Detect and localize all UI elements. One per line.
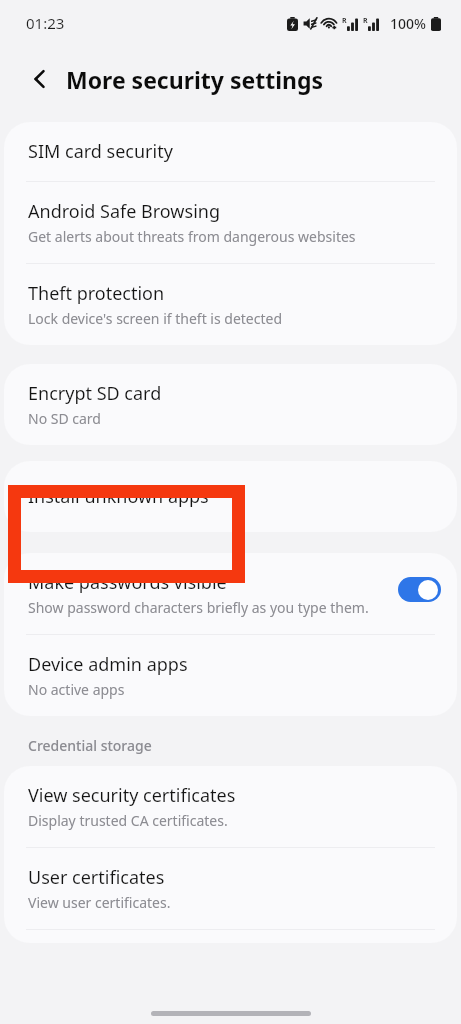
staticText: Lock device's screen if theft is detecte… bbox=[28, 309, 283, 328]
staticText: Get alerts about threats from dangerous … bbox=[28, 227, 356, 246]
staticText: Theft protection bbox=[28, 281, 165, 306]
button[interactable]: Device admin apps bbox=[4, 635, 457, 716]
button[interactable]: User certificates bbox=[4, 848, 457, 929]
staticText: No SD card bbox=[28, 409, 101, 428]
staticText: Display trusted CA certificates. bbox=[28, 811, 228, 830]
staticText: Install unknown apps bbox=[28, 484, 209, 509]
button[interactable]: Install unknown apps bbox=[4, 467, 457, 526]
staticText: Android Safe Browsing bbox=[28, 199, 220, 224]
staticText: User certificates bbox=[28, 865, 165, 890]
staticText: Show password characters briefly as you … bbox=[28, 598, 369, 617]
staticText: View security certificates bbox=[28, 783, 236, 808]
staticText: Encrypt SD card bbox=[28, 381, 162, 406]
staticText: Device admin apps bbox=[28, 652, 188, 677]
staticText: SIM card security bbox=[28, 139, 173, 164]
button[interactable]: View security certificates bbox=[4, 766, 457, 847]
staticText: No active apps bbox=[28, 680, 125, 699]
button[interactable]: SIM card security bbox=[4, 122, 457, 181]
button[interactable]: Back bbox=[20, 59, 60, 99]
button[interactable]: Make passwords visible toggle bbox=[398, 577, 441, 602]
button[interactable]: Theft protection bbox=[4, 264, 457, 345]
staticText: 100% bbox=[390, 14, 426, 33]
button[interactable]: Make passwords visible bbox=[4, 553, 457, 634]
staticText: R bbox=[363, 16, 368, 26]
staticText: Make passwords visible bbox=[28, 570, 227, 595]
staticText: 01:23 bbox=[26, 13, 65, 33]
staticText: Credential storage bbox=[28, 736, 152, 755]
staticText: View user certificates. bbox=[28, 893, 171, 912]
staticText: More security settings bbox=[66, 64, 324, 95]
staticText: R bbox=[342, 16, 347, 26]
button[interactable]: Encrypt SD card bbox=[4, 364, 457, 445]
button[interactable]: Android Safe Browsing bbox=[4, 182, 457, 263]
